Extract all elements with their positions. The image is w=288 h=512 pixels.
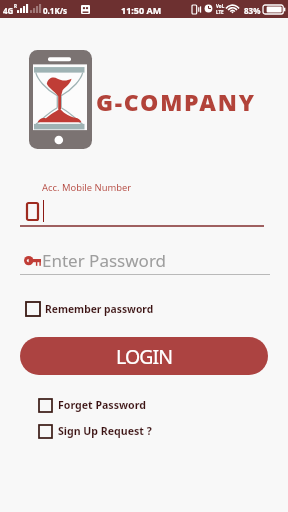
button[interactable]: Forget Password xyxy=(39,398,146,412)
staticText: 83% xyxy=(244,5,261,16)
staticText: VoL xyxy=(216,3,225,9)
staticText: Acc. Mobile Number xyxy=(42,181,132,194)
staticText: 4G xyxy=(3,5,14,16)
button[interactable]: Sign Up Request ? xyxy=(39,424,152,438)
staticText: 11:50 AM xyxy=(121,4,162,16)
staticText: LTE xyxy=(216,9,224,15)
staticText: Remember password xyxy=(45,302,154,316)
staticText: Enter Password xyxy=(42,249,167,272)
button[interactable]: LOGIN xyxy=(20,337,268,375)
staticText: 0.1K/s xyxy=(43,5,68,16)
staticText: Sign Up Request ? xyxy=(58,424,152,438)
staticText: R xyxy=(14,3,17,9)
staticText: Forget Password xyxy=(58,398,146,412)
staticText: G-COMPANY xyxy=(96,86,256,117)
button[interactable]: Remember password xyxy=(26,302,154,316)
staticText: LOGIN xyxy=(116,343,173,370)
